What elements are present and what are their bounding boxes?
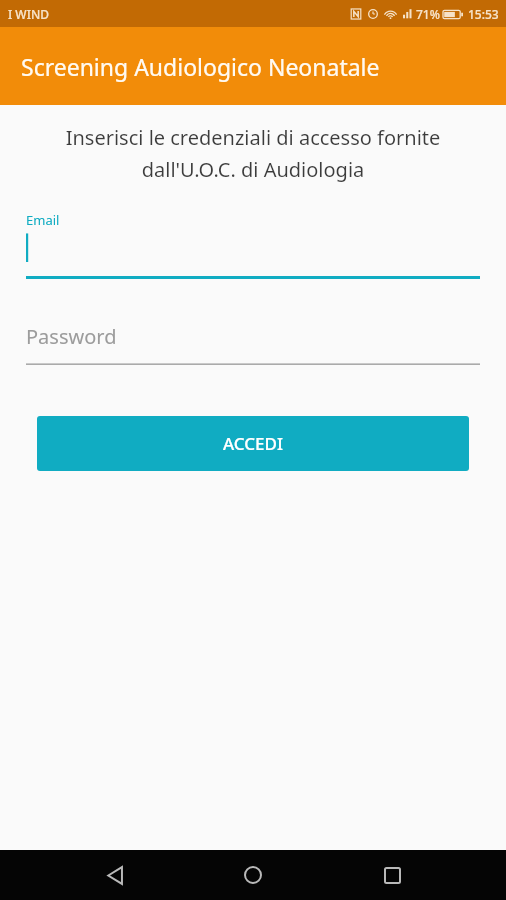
button[interactable]: Home [229,851,277,899]
button[interactable]: Recent apps [368,851,416,899]
staticText: Screening Audiologico Neonatale [21,51,380,82]
staticText: Inserisci le credenziali di accesso forn… [30,124,476,183]
button[interactable]: Email [26,211,480,279]
staticText: Password [26,323,117,350]
button[interactable]: ACCEDI [37,416,469,471]
button[interactable]: Screening Audiologico Neonatale [0,27,506,105]
staticText: ACCEDI [223,432,283,455]
staticText: 71% [416,6,440,22]
staticText: 15:53 [468,6,499,22]
staticText: I WIND [8,6,49,22]
staticText: Email [26,211,60,229]
button[interactable]: Password [26,323,480,365]
button[interactable]: Back [91,851,139,899]
